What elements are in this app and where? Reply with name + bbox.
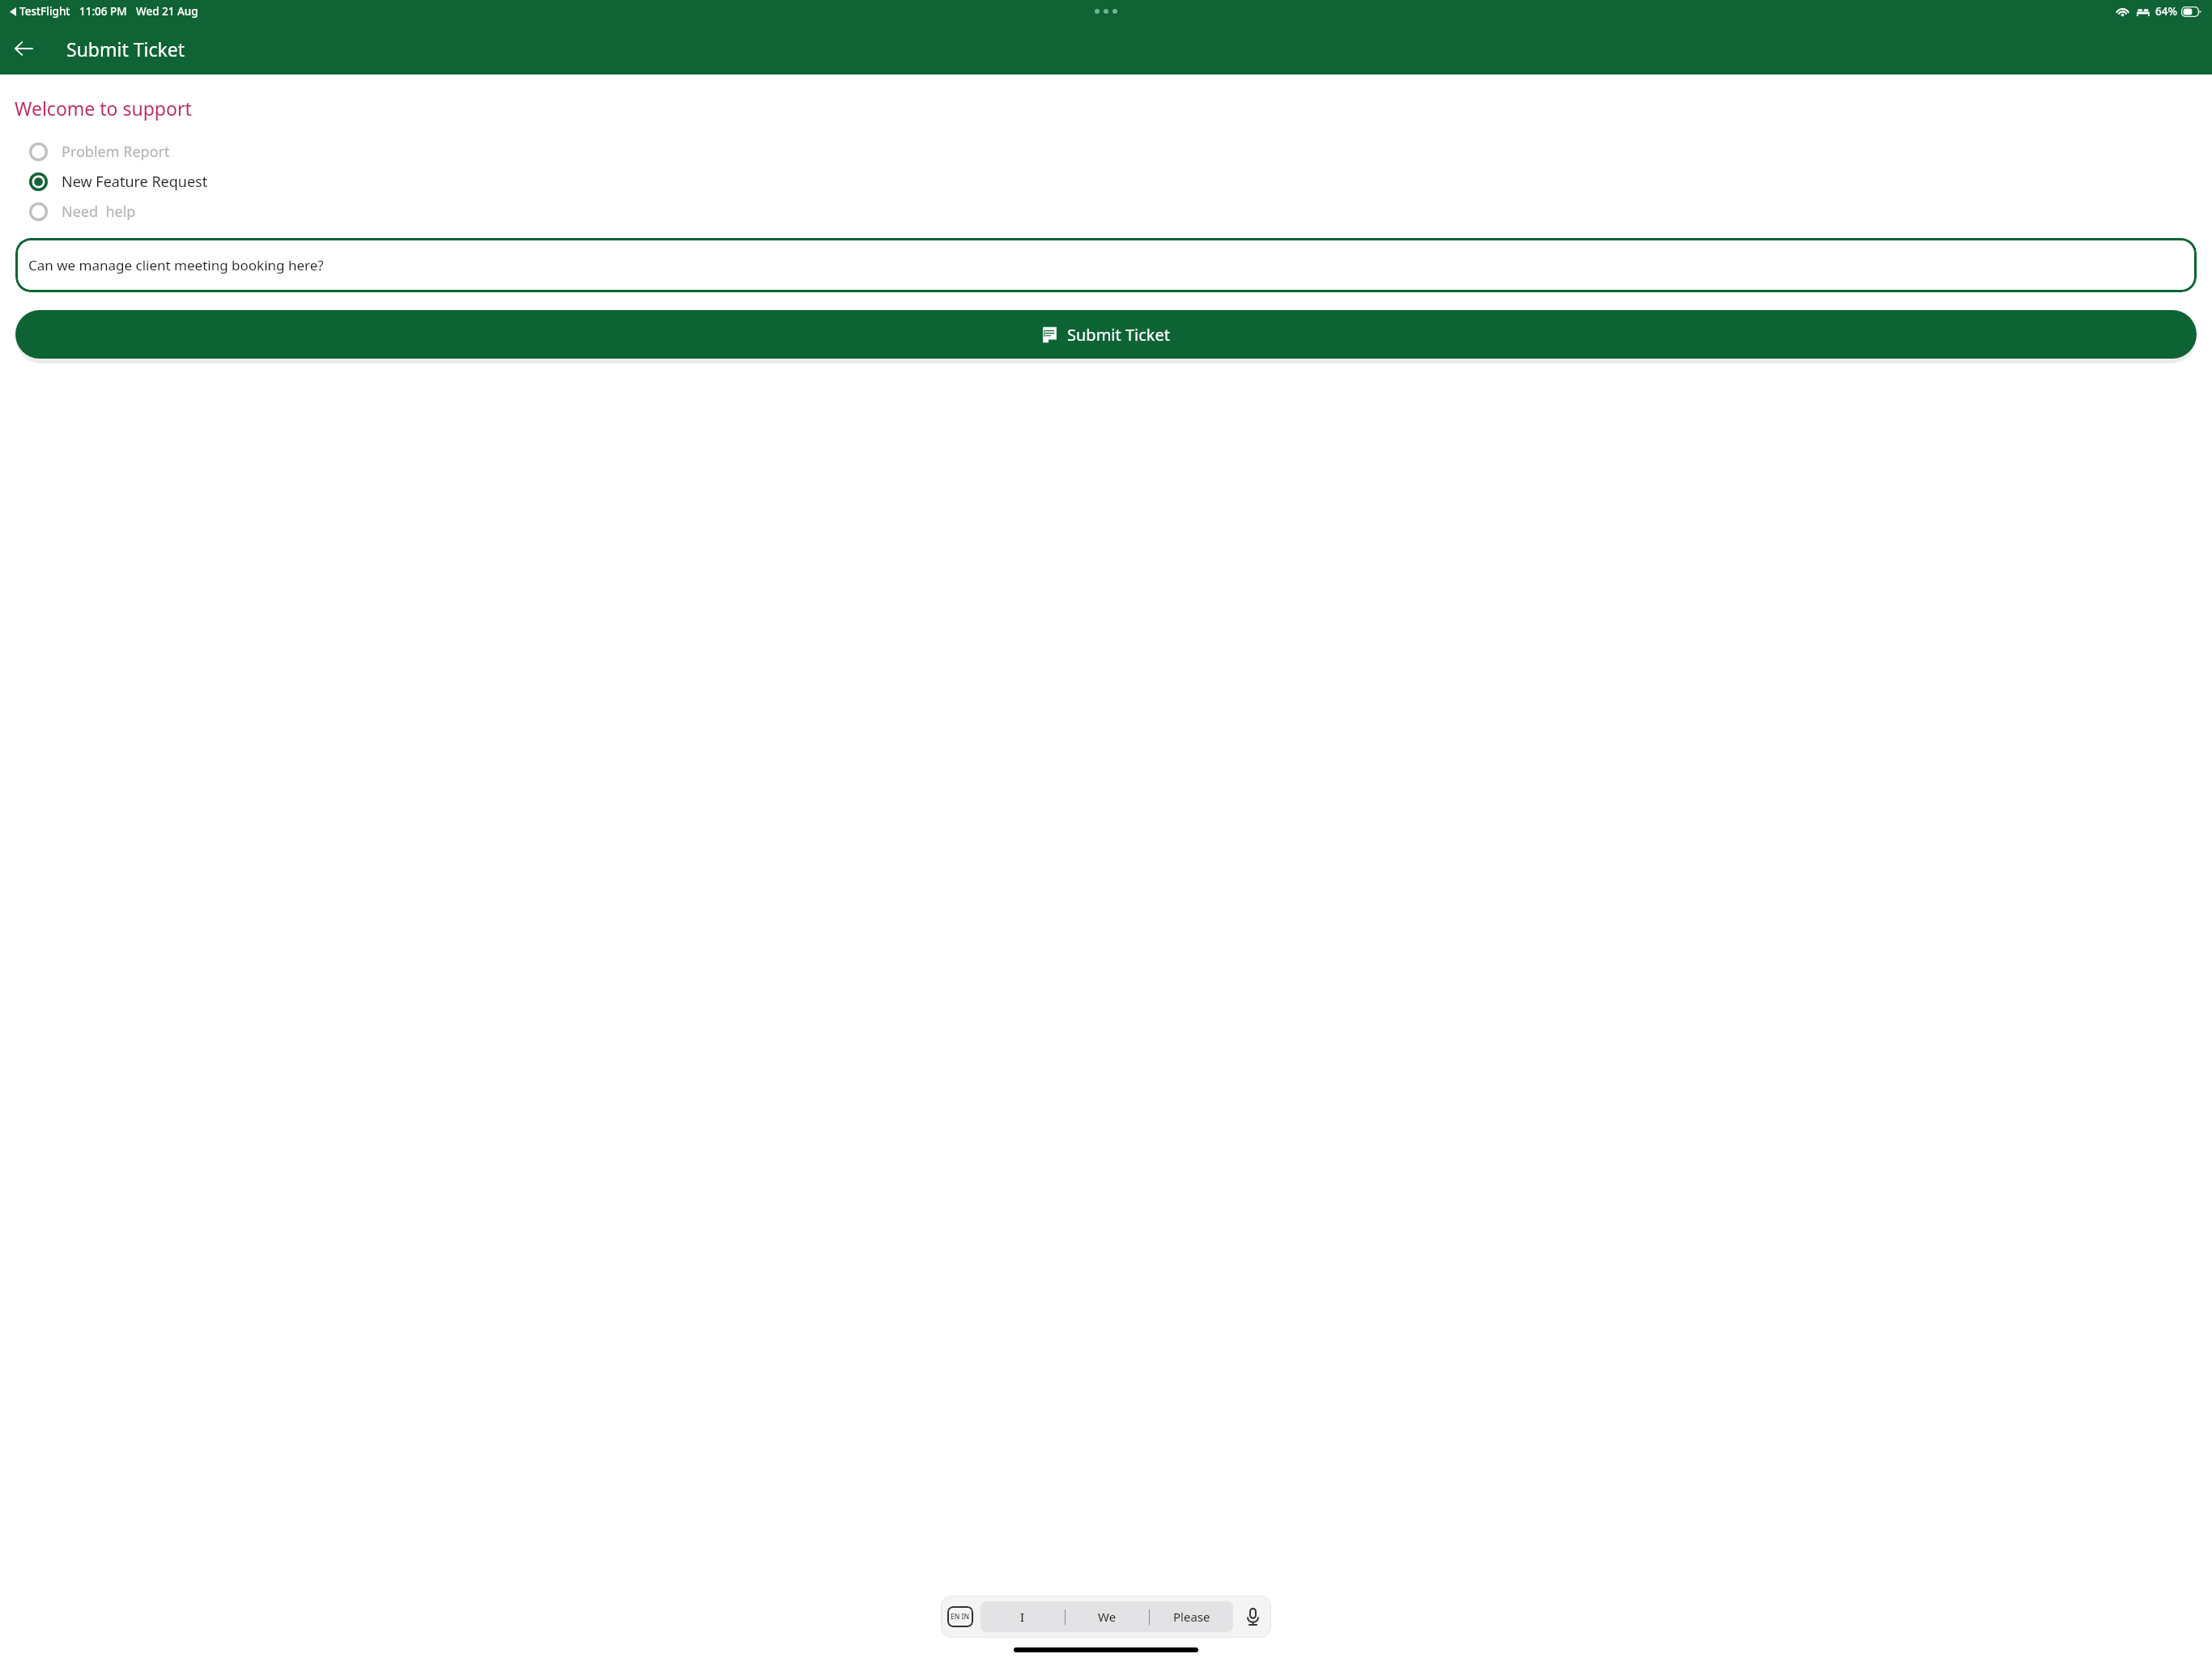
button[interactable]: Submit Ticket [15, 310, 2197, 359]
staticText: I [1020, 1609, 1025, 1625]
button[interactable]: Switch keyboard language [947, 1606, 973, 1627]
staticText: We [1098, 1609, 1117, 1625]
staticText: 11:06 PM [79, 4, 127, 19]
button[interactable]: Problem Report [0, 137, 2212, 167]
staticText: TestFlight [19, 4, 70, 19]
staticText: New Feature Request [62, 172, 208, 192]
button[interactable]: Please [1150, 1601, 1233, 1632]
staticText: Need help [62, 202, 136, 222]
staticText: Welcome to support [15, 96, 192, 121]
staticText: Problem Report [62, 142, 170, 162]
staticText: Can we manage client meeting booking her… [28, 256, 324, 274]
button[interactable]: Dictate [1240, 1605, 1265, 1629]
staticText: Submit Ticket [1067, 324, 1170, 346]
staticText: EN IN [951, 1612, 970, 1622]
button[interactable]: Can we manage client meeting booking her… [15, 238, 2197, 292]
button[interactable]: We [1066, 1601, 1149, 1632]
staticText: Please [1173, 1609, 1210, 1625]
button[interactable]: I [981, 1601, 1065, 1632]
button[interactable]: New Feature Request [0, 167, 2212, 197]
staticText: 64% [2155, 4, 2177, 19]
button[interactable]: Back [5, 30, 42, 67]
staticText: Wed 21 Aug [136, 4, 198, 19]
staticText: Submit Ticket [66, 36, 185, 62]
button[interactable]: Need help [0, 197, 2212, 227]
